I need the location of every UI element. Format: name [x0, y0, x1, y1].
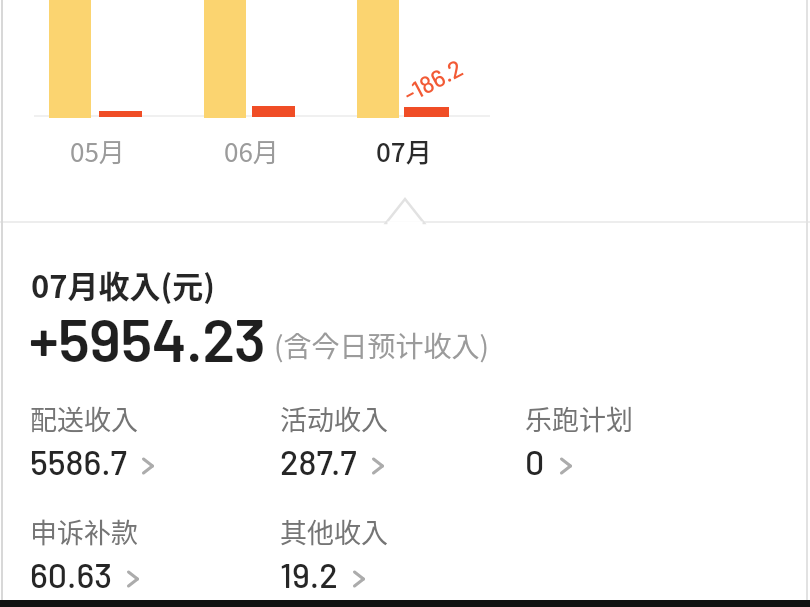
staticText: 其他收入: [280, 512, 388, 551]
button[interactable]: 05月: [37, 132, 157, 168]
button[interactable]: 19.2: [280, 554, 366, 595]
staticText: 07月: [376, 132, 432, 168]
button[interactable]: 60.63: [30, 554, 140, 595]
staticText: -186.2: [398, 53, 467, 108]
staticText: 5586.7: [30, 441, 127, 482]
staticText: 06月: [224, 132, 279, 168]
staticText: 活动收入: [280, 399, 388, 438]
button[interactable]: 287.7: [280, 441, 385, 482]
staticText: 0: [525, 441, 545, 482]
staticText: (含今日预计收入): [274, 325, 489, 366]
staticText: 07月收入(元): [31, 262, 216, 307]
button[interactable]: 07月: [344, 132, 464, 168]
button[interactable]: 0: [525, 441, 573, 482]
staticText: 19.2: [280, 554, 338, 595]
staticText: 60.63: [30, 554, 112, 595]
staticText: 申诉补款: [30, 512, 138, 551]
staticText: 05月: [70, 132, 125, 168]
button[interactable]: 06月: [191, 132, 311, 168]
button[interactable]: 5586.7: [30, 441, 155, 482]
staticText: 配送收入: [30, 399, 138, 438]
staticText: +5954.23: [29, 302, 266, 374]
staticText: 287.7: [280, 441, 357, 482]
staticText: 乐跑计划: [525, 399, 633, 438]
